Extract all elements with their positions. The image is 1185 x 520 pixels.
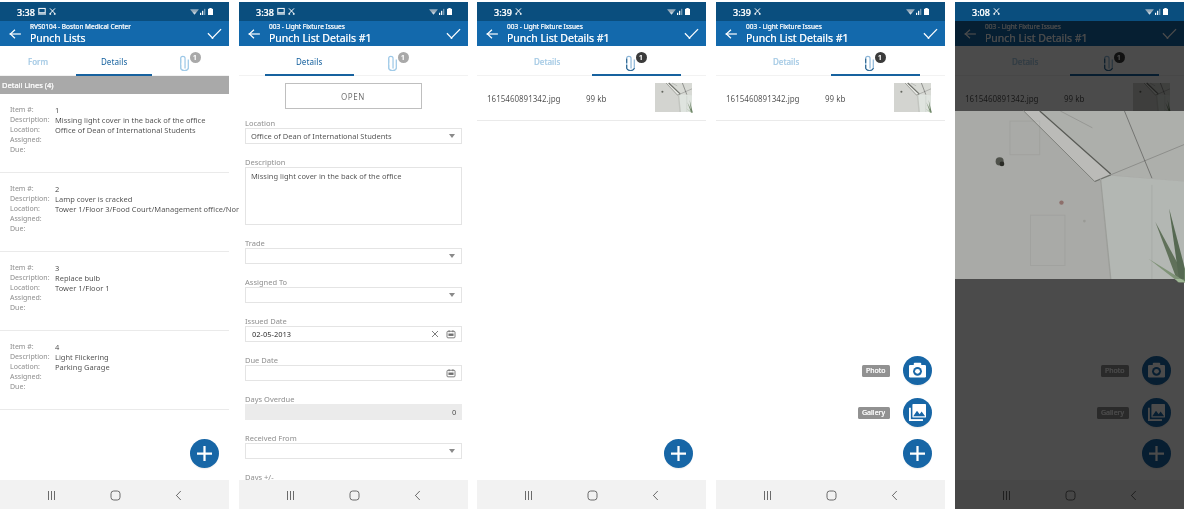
button[interactable]: Recents [38,482,64,508]
staticText: Missing light cover in the back of the o… [251,171,402,181]
staticText: Received From [245,433,297,443]
button[interactable] [245,443,462,459]
button[interactable]: Add [1142,439,1171,468]
staticText: 1 [55,105,60,115]
button[interactable]: Item #: [0,94,229,172]
button[interactable]: Save [916,21,945,46]
button[interactable]: Save [677,21,706,46]
button[interactable]: Details [76,46,152,76]
button[interactable]: Save [200,21,229,46]
button[interactable]: Home [1057,482,1083,508]
button[interactable]: Back [955,21,984,46]
staticText: Punch List Details #1 [985,31,1088,45]
staticText: Details [101,56,128,67]
button[interactable]: Back [239,21,268,46]
button[interactable]: Office of Dean of International Students [245,128,462,144]
button[interactable]: Photo [1101,365,1129,377]
button[interactable]: Photo [862,365,890,377]
button[interactable]: Home [818,482,844,508]
button[interactable] [245,287,462,303]
button[interactable]: 1615460891342.jpg [716,76,945,121]
staticText: 02-05-2013 [252,329,292,339]
staticText: Assigned: [10,214,42,224]
staticText: Details [296,56,323,67]
button[interactable]: Recents [277,482,303,508]
staticText: 1615460891342.jpg [487,93,561,104]
button[interactable]: Form [0,46,76,76]
button[interactable]: Choose from gallery [903,398,932,427]
staticText: Punch List Details #1 [746,31,849,45]
button[interactable]: Home [579,482,605,508]
button[interactable]: Details [742,46,831,76]
button[interactable]: Gallery [1097,407,1129,419]
staticText: Tower 1/Floor 1 [55,283,110,293]
button[interactable] [245,248,462,264]
button[interactable]: Choose from gallery [1142,398,1171,427]
button[interactable]: Attachments [152,46,228,76]
staticText: 3:39 [733,6,751,18]
button[interactable]: Take photo [1142,356,1171,385]
button[interactable]: Attachments [592,46,681,76]
staticText: Replace bulb [55,273,101,283]
button[interactable]: Back [881,482,907,508]
staticText: Gallery [862,408,886,418]
button[interactable]: Home [102,482,128,508]
button[interactable]: Save [439,21,468,46]
staticText: OPEN [341,91,366,102]
staticText: Trade [245,238,265,248]
button[interactable]: Item #: [0,252,229,330]
staticText: 3:38 [256,6,274,18]
button[interactable] [245,365,462,381]
button[interactable]: Home [341,482,367,508]
staticText: Location: [10,125,40,135]
staticText: Due: [10,382,26,392]
button[interactable]: Add [903,439,932,468]
button[interactable]: 1615460891342.jpg [955,76,1184,121]
staticText: Punch Lists [30,31,86,45]
staticText: Description: [10,194,50,204]
button[interactable]: Attachments [354,46,443,76]
button[interactable]: Add [664,439,693,468]
button[interactable]: Back [716,21,745,46]
button[interactable]: Item #: [0,173,229,251]
staticText: Form [28,56,49,67]
button[interactable]: Back [165,482,191,508]
staticText: Item #: [10,184,34,194]
button[interactable]: Add [190,439,219,468]
staticText: 2 [55,184,60,194]
button[interactable]: Attachments [1070,46,1159,76]
button[interactable]: Back [404,482,430,508]
staticText: Description [245,157,286,167]
staticText: 3 [55,263,60,273]
staticText: Description: [10,352,50,362]
button[interactable]: Back [1120,482,1146,508]
button[interactable]: Gallery [858,407,890,419]
staticText: Item #: [10,105,34,115]
button[interactable]: Back [0,21,29,46]
button[interactable]: Back [477,21,506,46]
staticText: Location: [10,204,40,214]
button[interactable]: 1615460891342.jpg [477,76,706,121]
staticText: 3:38 [17,6,35,18]
staticText: Tower 1/Floor 3/Food Court/Management of… [55,204,267,214]
staticText: Details [773,56,800,67]
button[interactable]: Details [503,46,592,76]
button[interactable]: Recents [515,482,541,508]
button[interactable]: Back [642,482,668,508]
staticText: 003 - Light Fixture Issues [507,22,583,31]
button[interactable]: Recents [993,482,1019,508]
staticText: Light Flickering [55,352,109,362]
button[interactable]: Attachments [831,46,920,76]
button[interactable]: OPEN [285,83,422,109]
button[interactable]: Details [981,46,1070,76]
staticText: Punch List Details #1 [269,31,372,45]
button[interactable]: 02-05-2013 [245,326,462,342]
button[interactable]: Save [1155,21,1184,46]
button[interactable]: Item #: [0,331,229,409]
button[interactable]: Missing light cover in the back of the o… [245,167,462,225]
button[interactable]: Recents [754,482,780,508]
button[interactable]: Details [265,46,354,76]
staticText: Days Overdue [245,394,295,404]
staticText: 1 [1117,53,1122,63]
button[interactable]: Take photo [903,356,932,385]
